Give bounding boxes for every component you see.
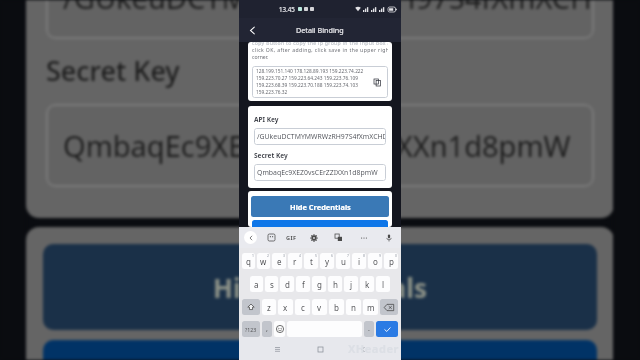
button[interactable]: Keyboard tool (326, 227, 350, 248)
button[interactable]: s (265, 276, 278, 292)
button[interactable]: QmbaqEc9XEZ0vsCErZZIXXn1d8pmW (254, 164, 386, 181)
staticText: API Key (254, 115, 279, 124)
button[interactable]: ?123 (242, 321, 260, 337)
staticText: h (333, 279, 338, 290)
button[interactable]: Home (315, 344, 325, 354)
staticText: click OK, after adding, click save in th… (252, 47, 388, 54)
staticText: 9 (379, 253, 381, 258)
staticText: XHeader (348, 341, 399, 356)
button[interactable]: Hide Credentials (251, 196, 389, 217)
button[interactable]: Back (239, 227, 261, 248)
button[interactable]: z (262, 299, 276, 315)
staticText: Hide Credentials (290, 202, 351, 212)
staticText: r (293, 256, 297, 267)
button[interactable]: v (312, 299, 327, 315)
button[interactable]: GIF (281, 227, 302, 248)
staticText: ?123 (245, 326, 257, 333)
button[interactable]: t (304, 253, 318, 269)
staticText: 159.223.70.27 159.223.64.243 159.223.76.… (256, 75, 358, 82)
button[interactable]: j (344, 276, 358, 292)
button[interactable]: . (364, 321, 374, 337)
button[interactable]: c (295, 299, 310, 315)
button[interactable]: r (288, 253, 302, 269)
button[interactable]: e (272, 253, 286, 269)
staticText: copy button to copy the ip group in the … (252, 42, 388, 47)
button[interactable]: , (262, 321, 272, 337)
button[interactable]: Copy (371, 76, 383, 88)
button[interactable]: o (368, 253, 382, 269)
button[interactable]: m (363, 299, 378, 315)
button[interactable]: Recents (272, 344, 282, 354)
button[interactable]: /GUkeuDCTMYMWRWzRH97S4fXmXCHD (254, 128, 386, 145)
staticText: . (368, 324, 370, 334)
staticText: , (266, 324, 268, 334)
staticText: g (317, 279, 322, 290)
button[interactable]: q (242, 253, 255, 269)
staticText: /GUkeuDCTMYMWRWzRH97S4fXmXCHD (63, 0, 594, 17)
button[interactable]: h (328, 276, 342, 292)
button[interactable]: Keyboard tool (377, 227, 401, 248)
button[interactable]: b (329, 299, 344, 315)
button[interactable]: d (280, 276, 294, 292)
staticText: 0 (395, 253, 397, 258)
button[interactable]: k (360, 276, 374, 292)
staticText: 8 (363, 253, 365, 258)
staticText: QmbaqEc9XEZ0vsCErZZIXXn1d8pmW (257, 168, 378, 177)
staticText: 13.45 (279, 5, 295, 13)
button[interactable]: w (257, 253, 270, 269)
staticText: p (389, 256, 394, 267)
button[interactable]: Keyboard tool (261, 227, 281, 248)
staticText: t (310, 256, 313, 267)
staticText: 4 (299, 253, 301, 258)
staticText: 3 (283, 253, 285, 258)
staticText: 7 (347, 253, 349, 258)
button[interactable]: Backspace (380, 299, 398, 315)
staticText: 5 (315, 253, 317, 258)
button[interactable]: n (346, 299, 361, 315)
staticText: i (358, 256, 361, 267)
staticText: o (373, 256, 378, 267)
staticText: v (317, 302, 322, 313)
staticText: d (285, 279, 290, 290)
staticText: 159.223.76.32 (256, 89, 288, 96)
button[interactable] (252, 220, 388, 227)
button[interactable]: y (320, 253, 334, 269)
staticText: a (254, 279, 259, 290)
button[interactable]: i (352, 253, 366, 269)
button[interactable]: Keyboard tool (302, 227, 326, 248)
staticText: x (283, 302, 288, 313)
staticText: w (260, 256, 267, 267)
staticText: 159.223.68.39 159.223.70.188 159.223.74.… (256, 82, 358, 89)
staticText: Secret Key (46, 52, 180, 89)
button[interactable]: l (376, 276, 390, 292)
staticText: s (270, 279, 274, 290)
button[interactable]: Back (244, 22, 260, 38)
button[interactable]: Shift (242, 299, 260, 315)
button[interactable]: a (250, 276, 263, 292)
button[interactable]: p (384, 253, 398, 269)
button[interactable]: Emoji (274, 321, 285, 337)
staticText: m (367, 302, 375, 313)
staticText: y (325, 256, 330, 267)
button[interactable]: x (278, 299, 293, 315)
staticText: corner. (252, 54, 269, 61)
staticText: Secret Key (254, 151, 288, 160)
button[interactable]: Keyboard tool (350, 227, 377, 248)
button[interactable]: Back (358, 344, 368, 354)
staticText: k (365, 279, 370, 290)
staticText: b (334, 302, 339, 313)
staticText: c (301, 302, 305, 313)
staticText: e (277, 256, 282, 267)
staticText: q (246, 256, 251, 267)
staticText: 128.199.151.140 178.128.89.193 159.223.7… (256, 68, 364, 75)
staticText: f (302, 279, 305, 290)
button[interactable]: g (312, 276, 326, 292)
staticText: 2 (267, 253, 269, 258)
button[interactable]: f (296, 276, 310, 292)
staticText: QmbaqEc9XEZ0vsCErZZIXXn1d8pmW (63, 126, 571, 165)
staticText: 6 (331, 253, 333, 258)
button[interactable]: Enter (376, 321, 398, 337)
button[interactable]: u (336, 253, 350, 269)
staticText: j (350, 279, 353, 290)
